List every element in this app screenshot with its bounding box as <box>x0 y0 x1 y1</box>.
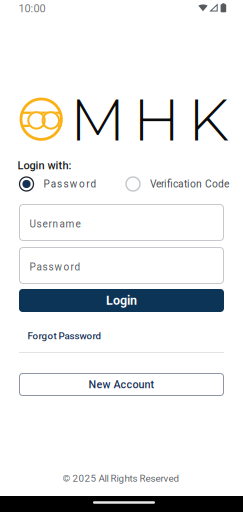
staticText: Password <box>43 178 97 190</box>
staticText: K <box>188 84 229 155</box>
button[interactable]: Password <box>19 247 224 284</box>
button[interactable]: Forgot Password <box>27 330 101 342</box>
staticText: Username <box>29 218 80 230</box>
button[interactable]: New Account <box>19 373 224 396</box>
button[interactable]: Username <box>19 204 224 241</box>
staticText: Verification Code <box>150 178 229 190</box>
staticText: Login with: <box>17 159 71 172</box>
staticText: © 2025 All Rights Reserved <box>62 473 179 484</box>
button[interactable]: Password <box>19 177 103 191</box>
staticText: 10:00 <box>18 2 45 15</box>
staticText: Forgot Password <box>27 330 101 342</box>
staticText: H <box>133 84 180 155</box>
staticText: M <box>70 84 125 155</box>
button[interactable]: Verification Code <box>126 177 234 191</box>
staticText: Login <box>106 293 137 308</box>
button[interactable]: Login <box>19 289 224 312</box>
staticText: New Account <box>88 378 154 391</box>
staticText: Password <box>29 261 80 273</box>
